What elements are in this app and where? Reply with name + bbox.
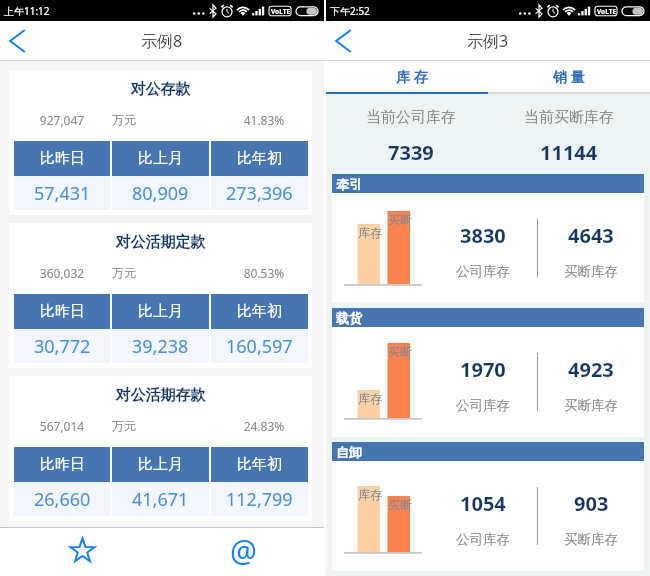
staticText: 24.83%: [214, 418, 314, 434]
button[interactable]: 牵引: [332, 174, 644, 193]
staticText: 对公活期存款: [9, 386, 312, 405]
staticText: 比年初: [237, 302, 282, 321]
staticText: 4643: [568, 222, 614, 249]
staticText: 库存: [358, 225, 382, 240]
button[interactable]: 自卸: [332, 442, 644, 461]
staticText: 示例3: [467, 30, 509, 52]
staticText: 买断: [388, 212, 412, 227]
staticText: 自卸: [336, 444, 362, 460]
staticText: 公司库存: [456, 531, 510, 548]
staticText: 比上月: [138, 455, 183, 474]
staticText: 对公存款: [9, 80, 312, 99]
staticText: 比上月: [138, 302, 183, 321]
staticText: 库 存: [396, 67, 428, 86]
staticText: 41.83%: [214, 112, 314, 128]
staticText: 903: [574, 490, 609, 517]
staticText: 160,597: [226, 334, 293, 359]
button[interactable]: 对公活期定款: [9, 223, 312, 368]
button[interactable]: 对公存款: [9, 70, 312, 215]
staticText: 11144: [540, 139, 598, 166]
staticText: 比年初: [237, 149, 282, 168]
button[interactable]: 库 存: [326, 61, 488, 92]
staticText: 万元: [112, 265, 136, 280]
staticText: 买断: [388, 497, 412, 512]
staticText: 3830: [460, 222, 506, 249]
staticText: 买断库存: [564, 263, 618, 280]
staticText: 比昨日: [40, 149, 85, 168]
staticText: 80,909: [132, 181, 189, 206]
button[interactable]: Favorites: [0, 528, 162, 576]
staticText: 买断库存: [564, 397, 618, 414]
staticText: VoLTE: [597, 7, 617, 16]
button[interactable]: Back: [0, 21, 38, 60]
staticText: 80.53%: [214, 265, 314, 281]
staticText: 买断: [388, 344, 412, 359]
staticText: 买断库存: [564, 531, 618, 548]
staticText: 360,032: [12, 265, 112, 281]
staticText: 41,671: [132, 487, 189, 512]
staticText: 库存: [358, 487, 382, 502]
staticText: 比年初: [237, 455, 282, 474]
staticText: 当前公司库存: [366, 108, 456, 127]
staticText: 927,047: [12, 112, 112, 128]
button[interactable]: 载货: [332, 308, 644, 327]
staticText: 比上月: [138, 149, 183, 168]
staticText: 公司库存: [456, 263, 510, 280]
staticText: 载货: [336, 310, 362, 326]
staticText: 112,799: [226, 487, 293, 512]
staticText: 57,431: [34, 181, 91, 206]
staticText: 1970: [460, 356, 506, 383]
staticText: 39,238: [132, 334, 189, 359]
button[interactable]: Back: [326, 21, 364, 60]
staticText: 比昨日: [40, 302, 85, 321]
staticText: VoLTE: [271, 7, 291, 16]
staticText: 比昨日: [40, 455, 85, 474]
staticText: 30,772: [34, 334, 91, 359]
staticText: 牵引: [336, 176, 362, 192]
staticText: 上午11:12: [4, 4, 50, 18]
staticText: 万元: [112, 112, 136, 127]
staticText: 对公活期定款: [9, 233, 312, 252]
staticText: 4923: [568, 356, 614, 383]
staticText: 示例8: [141, 30, 183, 52]
staticText: 下午2:52: [330, 4, 370, 18]
staticText: 销 量: [553, 67, 585, 86]
staticText: 273,396: [226, 181, 293, 206]
button[interactable]: 对公活期存款: [9, 376, 312, 521]
staticText: 库存: [358, 391, 382, 406]
staticText: 当前买断库存: [524, 108, 614, 127]
staticText: 公司库存: [456, 397, 510, 414]
staticText: @: [230, 530, 257, 571]
staticText: 567,014: [12, 418, 112, 434]
button[interactable]: Mail: [162, 528, 324, 576]
staticText: 26,660: [34, 487, 91, 512]
staticText: 7339: [388, 139, 434, 166]
button[interactable]: 销 量: [488, 61, 650, 92]
staticText: 万元: [112, 418, 136, 433]
staticText: 1054: [460, 490, 506, 517]
